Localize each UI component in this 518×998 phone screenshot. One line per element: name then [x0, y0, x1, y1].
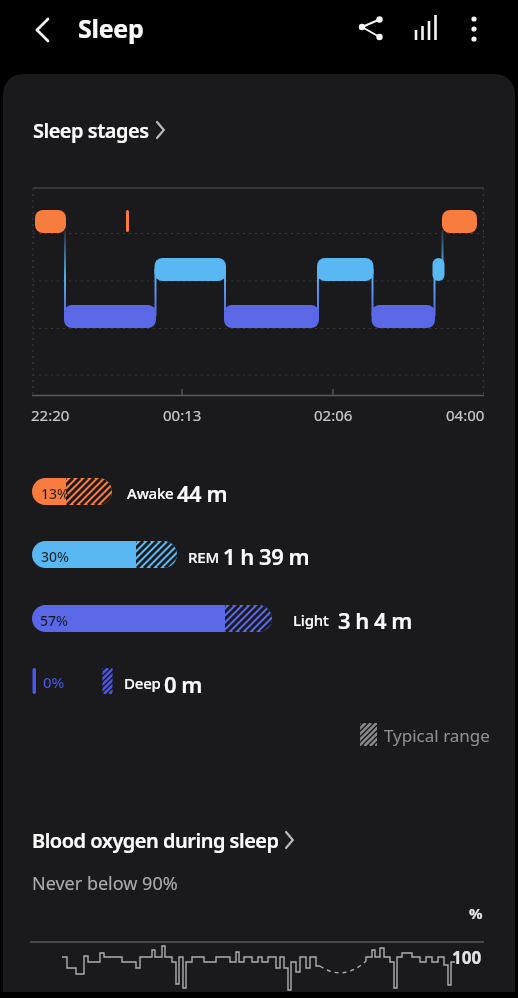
staticText: 0 m [164, 669, 202, 699]
staticText: 22:20 [31, 405, 70, 425]
staticText: Sleep [78, 11, 144, 45]
staticText: 04:00 [446, 405, 485, 425]
staticText: Never below 90% [32, 871, 178, 896]
staticText: 3 h 4 m [338, 605, 412, 635]
button[interactable] [352, 8, 392, 48]
staticText: Blood oxygen during sleep [32, 827, 279, 854]
staticText: 57% [40, 611, 68, 630]
button[interactable] [456, 8, 496, 48]
staticText: Sleep stages [33, 117, 149, 144]
staticText: % [469, 903, 483, 923]
staticText: REM [188, 547, 220, 567]
staticText: Typical range [384, 724, 490, 747]
button[interactable] [24, 12, 64, 52]
button[interactable]: Sleep stages [30, 112, 175, 148]
staticText: 44 m [177, 478, 228, 508]
staticText: 0% [43, 672, 65, 692]
staticText: Awake [127, 483, 174, 503]
staticText: 13% [41, 484, 69, 503]
staticText: 1 h 39 m [223, 541, 310, 571]
staticText: 100 [452, 946, 482, 969]
staticText: 00:13 [163, 405, 202, 425]
staticText: 02:06 [314, 405, 353, 425]
button[interactable] [406, 8, 446, 48]
staticText: Deep [124, 673, 161, 693]
staticText: 30% [41, 547, 69, 566]
button[interactable]: Blood oxygen during sleep [30, 822, 305, 858]
staticText: Light [293, 610, 329, 630]
